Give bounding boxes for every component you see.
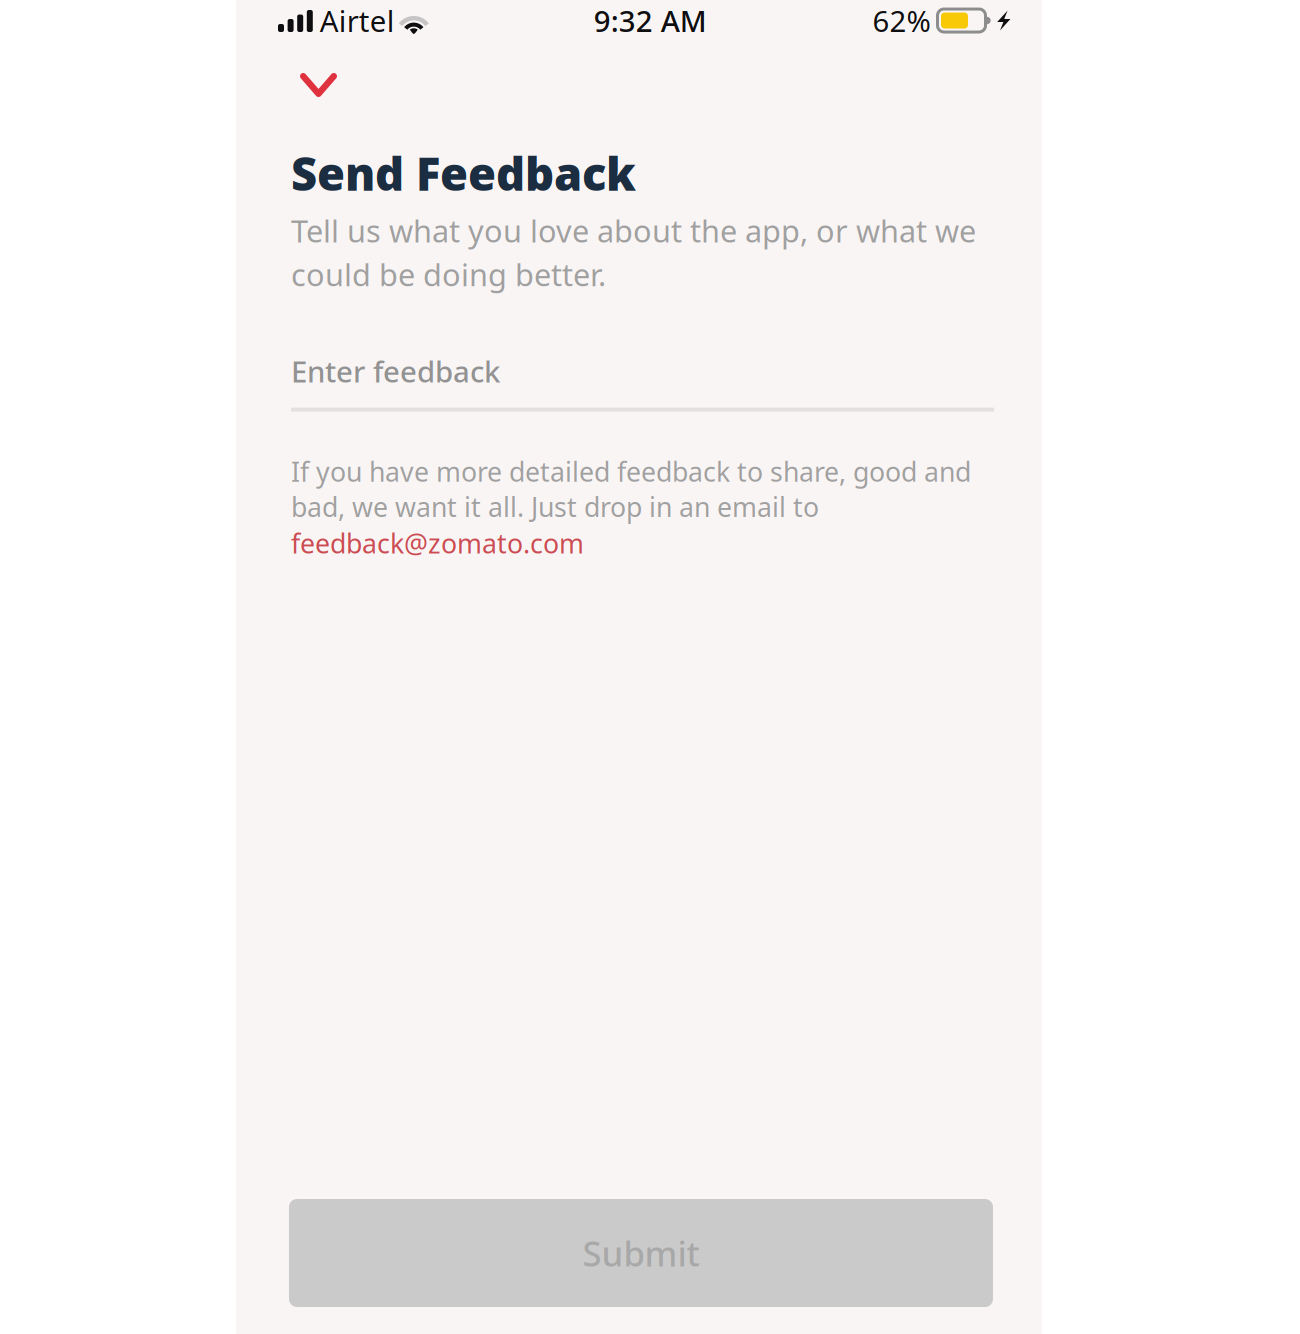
staticText: Tell us what you love about the app, or … xyxy=(291,210,976,295)
staticText: Enter feedback xyxy=(291,352,500,391)
button[interactable]: feedback@zomato.com xyxy=(291,525,584,561)
button[interactable]: Submit xyxy=(289,1199,993,1307)
button[interactable]: Dismiss xyxy=(284,59,353,111)
staticText: Send Feedback xyxy=(291,143,636,203)
button[interactable]: Enter feedback xyxy=(291,352,994,412)
staticText: feedback@zomato.com xyxy=(291,525,584,561)
staticText: If you have more detailed feedback to sh… xyxy=(291,454,971,524)
staticText: Submit xyxy=(582,1230,699,1276)
staticText: 62% xyxy=(872,1,930,40)
staticText: 9:32 AM xyxy=(594,1,707,40)
staticText: Airtel xyxy=(320,1,395,40)
